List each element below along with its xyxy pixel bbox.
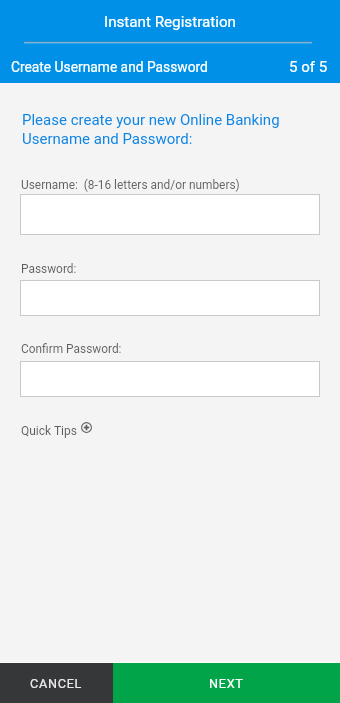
staticText: CANCEL [30, 676, 83, 691]
staticText: Confirm Password: [21, 342, 122, 356]
staticText: Username: (8-16 letters and/or numbers) [21, 178, 240, 192]
staticText: NEXT [209, 676, 244, 691]
button[interactable]: CANCEL [0, 663, 113, 703]
staticText: Create Username and Password [11, 59, 208, 75]
button[interactable]: NEXT [113, 663, 340, 703]
button[interactable] [20, 280, 320, 316]
button[interactable] [20, 361, 320, 397]
button[interactable]: Quick Tips [21, 424, 77, 438]
staticText: Please create your new Online Banking Us… [22, 111, 280, 147]
staticText: 5 of 5 [289, 58, 328, 76]
button[interactable] [20, 194, 320, 235]
staticText: Instant Registration [104, 13, 236, 31]
staticText: Password: [21, 262, 77, 276]
button[interactable]: Expand quick tips [80, 421, 93, 434]
